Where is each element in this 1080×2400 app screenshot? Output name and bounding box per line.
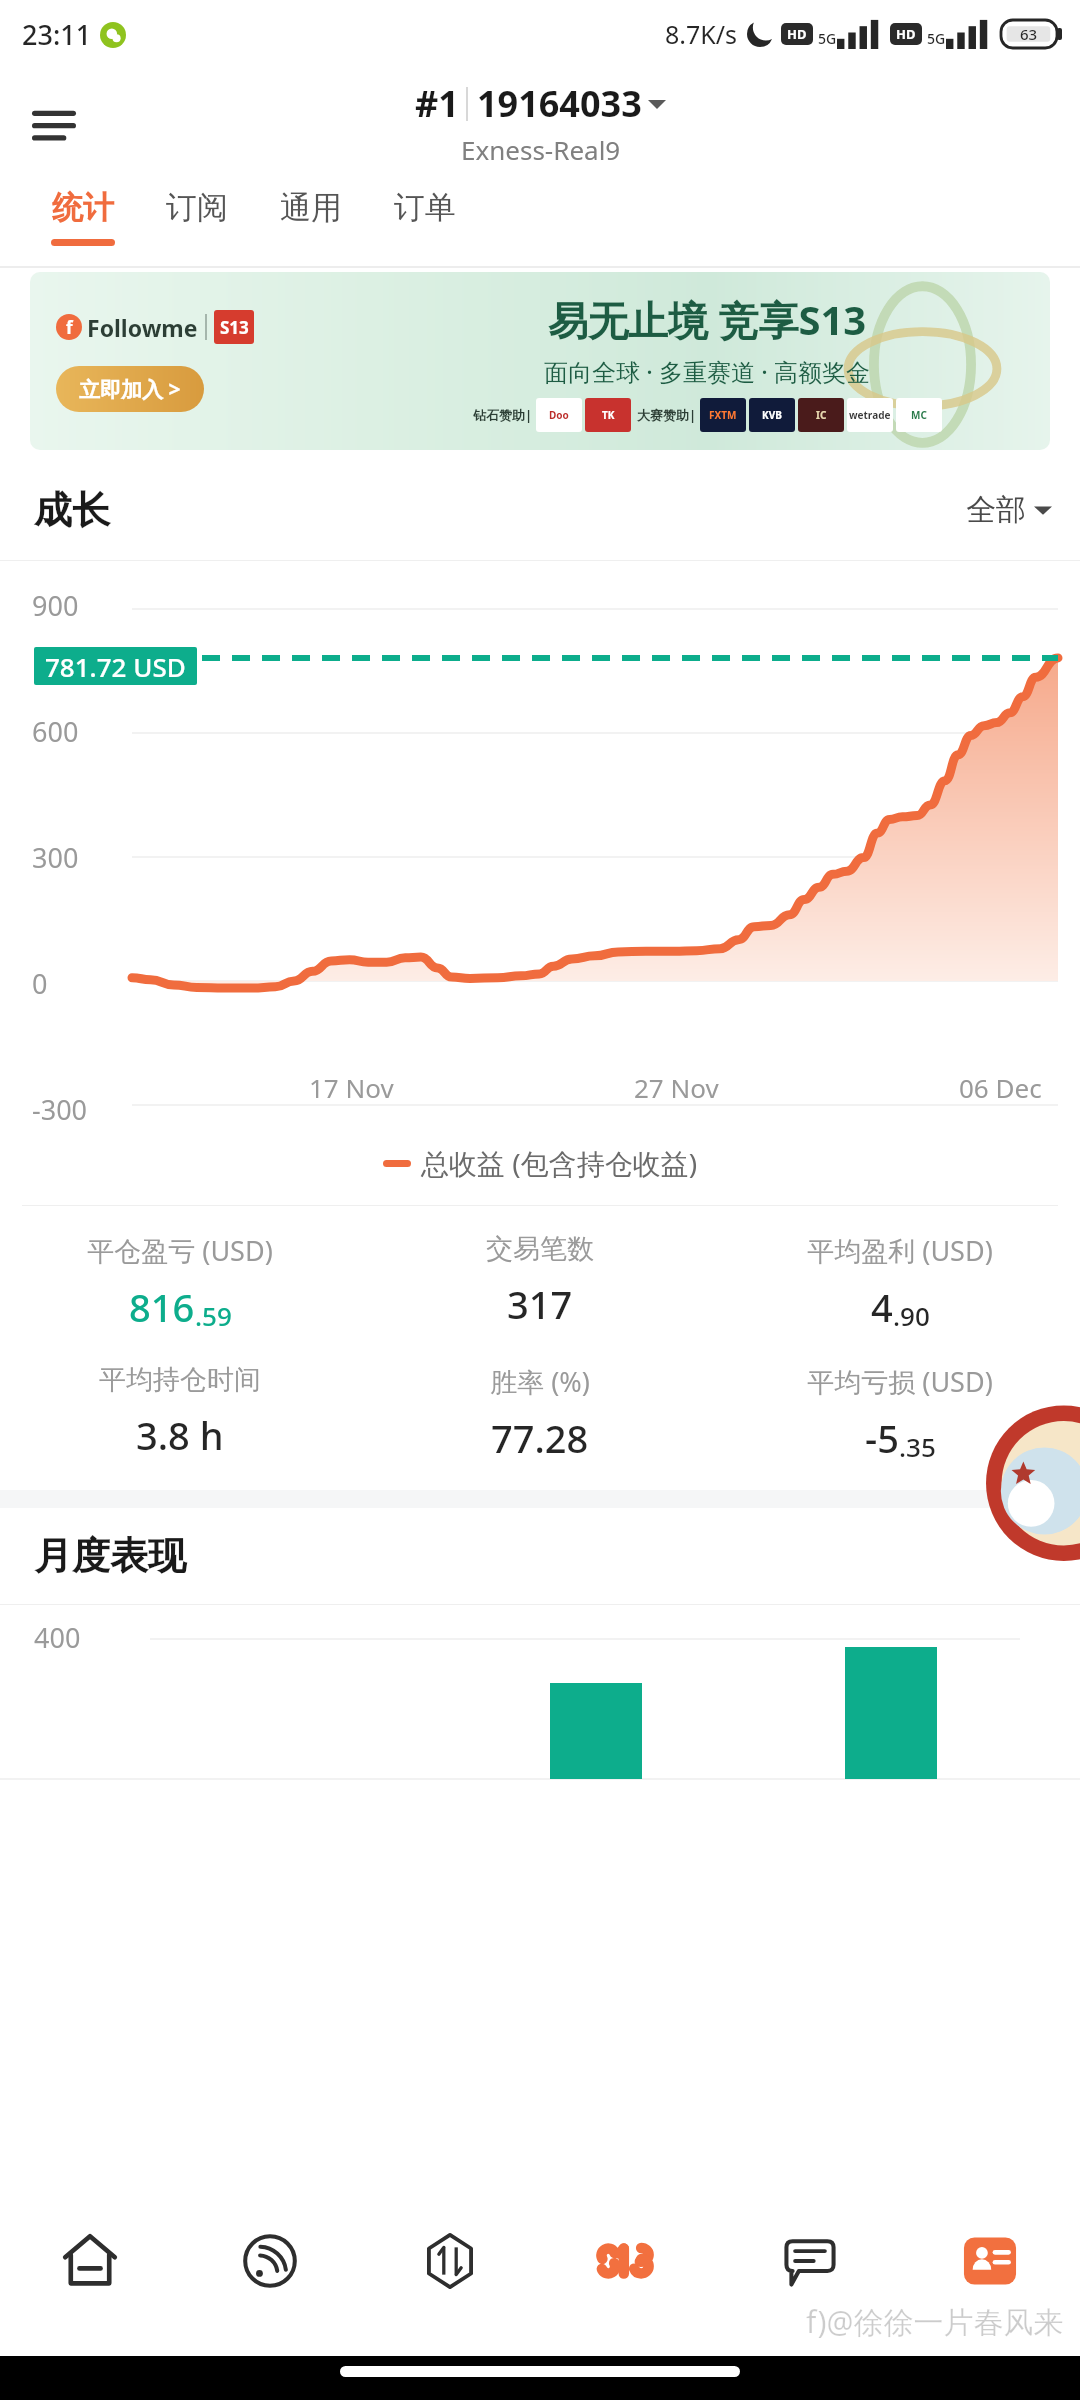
- button[interactable]: S13 event: [540, 2230, 720, 2356]
- button[interactable]: 订阅: [140, 178, 254, 268]
- staticText: 06 Dec: [959, 1070, 1042, 1105]
- staticText: 钻石赞助|: [473, 406, 533, 424]
- staticText: .59: [195, 1298, 232, 1333]
- staticText: 全部: [966, 491, 1026, 529]
- staticText: 平均持仓时间: [99, 1363, 261, 1397]
- button[interactable]: 统计: [26, 178, 140, 268]
- staticText: .90: [893, 1298, 930, 1333]
- staticText: 77.28: [491, 1412, 589, 1464]
- button[interactable]: Home: [0, 2230, 180, 2356]
- staticText: 订单: [394, 188, 456, 227]
- staticText: 23:11: [22, 16, 92, 53]
- button[interactable]: Profile: [900, 2230, 1080, 2356]
- staticText: 781.72 USD: [45, 649, 186, 684]
- staticText: 总收益 (包含持仓收益): [421, 1144, 698, 1182]
- button[interactable]: 全部: [966, 491, 1052, 529]
- staticText: 通用: [280, 188, 342, 227]
- staticText: Doo: [549, 408, 569, 422]
- staticText: S13: [220, 316, 249, 339]
- staticText: 成长: [34, 486, 110, 534]
- staticText: 816: [129, 1281, 195, 1333]
- staticText: 订阅: [166, 188, 228, 227]
- button[interactable]: Signals: [180, 2230, 360, 2356]
- staticText: 0: [32, 965, 48, 1002]
- staticText: 17 Nov: [309, 1070, 394, 1105]
- staticText: 大赛赞助|: [637, 406, 697, 424]
- staticText: FXTM: [709, 408, 737, 422]
- staticText: 5G: [818, 29, 837, 48]
- button[interactable]: Menu: [22, 91, 86, 155]
- staticText: 统计: [52, 188, 114, 227]
- staticText: 900: [32, 587, 79, 624]
- button[interactable]: 立即加入 >: [56, 366, 204, 412]
- staticText: Followme: [87, 312, 198, 343]
- staticText: 317: [507, 1278, 573, 1330]
- staticText: 平均亏损 (USD): [807, 1363, 993, 1400]
- staticText: 400: [34, 1619, 81, 1656]
- staticText: 8.7K/s: [665, 17, 738, 51]
- staticText: IC: [816, 408, 827, 422]
- staticText: 交易笔数: [486, 1232, 594, 1266]
- button[interactable]: #1: [415, 79, 666, 167]
- staticText: 胜率 (%): [490, 1363, 590, 1400]
- staticText: f: [66, 316, 73, 339]
- staticText: HD: [896, 25, 916, 43]
- staticText: TK: [602, 408, 615, 422]
- staticText: 面向全球 · 多重赛道 · 高额奖金: [544, 355, 871, 388]
- staticText: Exness-Real9: [461, 132, 621, 167]
- staticText: #1: [415, 79, 459, 128]
- staticText: f)@徐徐一片春风来: [806, 2301, 1064, 2342]
- staticText: 平均盈利 (USD): [807, 1232, 993, 1269]
- button[interactable]: Trade: [360, 2230, 540, 2356]
- button[interactable]: S13 campaign banner: [30, 272, 1050, 450]
- staticText: KVB: [762, 408, 782, 422]
- button[interactable]: 订单: [368, 178, 482, 268]
- staticText: 63: [1020, 24, 1038, 44]
- staticText: .35: [899, 1429, 936, 1464]
- staticText: HD: [787, 25, 807, 43]
- button[interactable]: Messages: [720, 2230, 900, 2356]
- staticText: 19164033: [477, 79, 642, 128]
- staticText: wetrade: [849, 408, 891, 422]
- staticText: 平仓盈亏 (USD): [87, 1232, 273, 1269]
- staticText: 5G: [927, 29, 946, 48]
- staticText: -300: [32, 1091, 88, 1121]
- staticText: MC: [911, 408, 927, 422]
- staticText: -5: [865, 1412, 899, 1464]
- staticText: 600: [32, 713, 79, 750]
- staticText: 月度表现: [34, 1532, 186, 1580]
- button[interactable]: 通用: [254, 178, 368, 268]
- staticText: 300: [32, 839, 79, 876]
- staticText: 立即加入 >: [79, 375, 181, 404]
- staticText: 3.8 h: [136, 1409, 224, 1461]
- staticText: 27 Nov: [634, 1070, 719, 1105]
- staticText: 易无止境 竞享S13: [548, 292, 867, 347]
- staticText: 4: [871, 1281, 893, 1333]
